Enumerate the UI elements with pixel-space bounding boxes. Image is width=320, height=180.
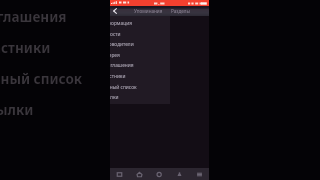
- staticText: иглашения: [0, 8, 67, 22]
- staticText: ылки: [0, 101, 34, 115]
- button[interactable]: Участники: [110, 71, 170, 82]
- button[interactable]: Приглашения: [110, 60, 170, 71]
- staticText: Разделы: [171, 8, 190, 14]
- button[interactable]: ылки: [0, 101, 34, 115]
- staticText: Галерея: [110, 52, 120, 59]
- button[interactable]: иглашения: [0, 8, 67, 22]
- button[interactable]: Чёрный список: [110, 82, 170, 93]
- staticText: Руководители: [110, 41, 134, 48]
- button[interactable]: Информация: [110, 18, 170, 29]
- staticText: Чёрный список: [110, 84, 137, 91]
- staticText: Участники: [110, 73, 126, 80]
- button[interactable]: Back: [149, 168, 169, 180]
- staticText: Информация: [110, 20, 132, 27]
- button[interactable]: Разделы: [167, 6, 193, 16]
- button[interactable]: рный список: [0, 70, 83, 84]
- button[interactable]: Menu: [189, 168, 209, 180]
- staticText: Новости: [110, 31, 121, 38]
- button[interactable]: Home: [129, 168, 149, 180]
- button[interactable]: Упоминания: [132, 6, 165, 16]
- button[interactable]: Notifications: [169, 168, 189, 180]
- button[interactable]: Back: [110, 6, 119, 16]
- button[interactable]: Руководители: [110, 39, 170, 50]
- staticText: астники: [0, 39, 51, 53]
- staticText: Ссылки: [110, 94, 119, 101]
- button[interactable]: астники: [0, 39, 51, 53]
- button[interactable]: Галерея: [110, 50, 170, 61]
- button[interactable]: Новости: [110, 29, 170, 40]
- staticText: Приглашения: [110, 62, 134, 69]
- staticText: Упоминания: [134, 8, 163, 14]
- button[interactable]: Ссылки: [110, 92, 170, 103]
- staticText: рный список: [0, 70, 83, 84]
- button[interactable]: Recent apps: [110, 168, 129, 180]
